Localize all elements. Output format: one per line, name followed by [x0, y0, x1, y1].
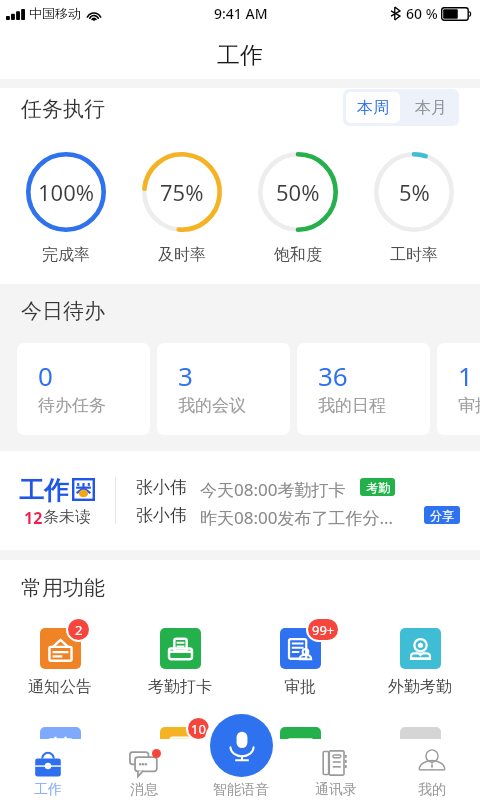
staticText: 工作 — [217, 41, 263, 70]
staticText: 及时率 — [158, 245, 206, 265]
staticText: 12 — [24, 507, 43, 529]
staticText: 完成率 — [42, 245, 90, 265]
staticText: 工作 — [19, 475, 69, 506]
staticText: 审批 — [284, 677, 316, 697]
button[interactable]: 任务 — [120, 717, 240, 792]
staticText: 工作 — [34, 781, 62, 799]
button[interactable]: 消息 — [96, 739, 192, 800]
button[interactable]: 会议 — [240, 717, 360, 792]
staticText: 中国移动 — [29, 5, 81, 21]
button[interactable]: 考勤打卡 — [120, 618, 240, 693]
staticText: 日程 — [44, 776, 76, 796]
staticText: 1 — [458, 358, 473, 393]
staticText: 待办任务 — [38, 395, 106, 416]
staticText: 本月 — [415, 98, 447, 118]
staticText: 今天08:00考勤打卡 — [200, 478, 346, 501]
staticText: 今日待办 — [21, 298, 105, 324]
staticText: 分享 — [430, 508, 454, 523]
staticText: 我的 — [418, 781, 446, 799]
button[interactable]: 审批 — [240, 618, 360, 693]
staticText: 张小伟 — [136, 477, 187, 498]
button[interactable]: 智能语音 — [210, 714, 273, 777]
button[interactable]: 本周 — [346, 92, 400, 123]
staticText: 75% — [160, 177, 204, 207]
button[interactable]: 100% — [8, 152, 124, 272]
button[interactable]: 日程 — [0, 717, 120, 792]
button[interactable]: 75% — [124, 152, 240, 272]
button[interactable]: 本月 — [403, 92, 459, 123]
button[interactable]: 更多 — [360, 717, 480, 792]
button[interactable]: 分享 — [424, 506, 460, 524]
button[interactable]: 50% — [240, 152, 356, 272]
staticText: 本周 — [357, 98, 389, 118]
staticText: 智能语音 — [213, 781, 269, 799]
staticText: 饱和度 — [274, 245, 322, 265]
staticText: 2 — [75, 621, 83, 639]
button[interactable]: 通讯录 — [288, 739, 384, 800]
staticText: 10 — [191, 720, 206, 738]
staticText: 常用功能 — [21, 575, 105, 601]
staticText: 工时率 — [390, 245, 438, 265]
button[interactable]: 外勤考勤 — [360, 618, 480, 693]
button[interactable]: 1 — [437, 343, 480, 435]
staticText: 外勤考勤 — [388, 677, 452, 697]
staticText: 任务执行 — [21, 96, 105, 122]
staticText: 60 % — [406, 4, 438, 23]
button[interactable]: 考勤 — [360, 478, 395, 496]
staticText: 审批 — [458, 395, 480, 416]
button[interactable]: 通知公告 — [0, 618, 120, 693]
staticText: 50% — [276, 177, 320, 207]
staticText: 我的日程 — [318, 395, 386, 416]
button[interactable]: 5% — [356, 152, 472, 272]
staticText: 36 — [318, 358, 348, 393]
staticText: 通讯录 — [315, 781, 357, 799]
button[interactable]: 工作 — [0, 451, 480, 550]
button[interactable]: 0 — [17, 343, 150, 435]
staticText: 张小伟 — [136, 505, 187, 526]
staticText: 考勤打卡 — [148, 677, 212, 697]
button[interactable]: 工作 — [0, 739, 96, 800]
staticText: 0 — [38, 358, 53, 393]
staticText: 5% — [399, 177, 430, 207]
staticText: 3 — [178, 358, 193, 393]
button[interactable]: 我的 — [384, 739, 480, 800]
staticText: 我的会议 — [178, 395, 246, 416]
staticText: 9:41 AM — [214, 4, 268, 23]
staticText: 更多 — [404, 776, 436, 796]
staticText: 通知公告 — [28, 677, 92, 697]
button[interactable]: 36 — [297, 343, 430, 435]
staticText: 100% — [38, 177, 95, 207]
staticText: 条未读 — [43, 507, 91, 527]
staticText: 昨天08:00发布了工作分… — [200, 506, 393, 529]
staticText: 99+ — [312, 621, 335, 639]
staticText: 消息 — [130, 781, 158, 799]
button[interactable]: 3 — [157, 343, 290, 435]
staticText: 考勤 — [366, 480, 390, 495]
